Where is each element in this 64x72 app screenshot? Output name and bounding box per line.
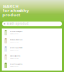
staticText: Greek Yogurt Plain (10, 47, 23, 49)
staticText: Nutri-Score B (10, 57, 19, 59)
staticText: Whole Grain Bread (10, 39, 23, 40)
button[interactable]: Greek Yogurt Plain (2, 45, 62, 53)
staticText: Organic Apple Juice (10, 30, 23, 32)
button[interactable]: Search a product (2, 21, 62, 26)
staticText: product (2, 12, 20, 17)
staticText: Nutri-Score A (10, 66, 19, 67)
staticText: Nutri-Score A (10, 33, 19, 35)
staticText: Search a product (6, 22, 28, 25)
button[interactable]: Whole Grain Bread (2, 37, 62, 45)
staticText: Green Tea Matcha (10, 63, 23, 65)
button[interactable]: Almond Milk Drink (2, 53, 62, 61)
button[interactable]: Organic Apple Juice (2, 28, 62, 37)
staticText: Nutri-Score B (10, 41, 19, 43)
staticText: SEARCH (2, 4, 18, 9)
staticText: Nutri-Score A (10, 49, 19, 51)
staticText: for a healthy (2, 8, 28, 13)
staticText: Almond Milk Drink (10, 55, 21, 57)
button[interactable]: Green Tea Matcha (2, 61, 62, 69)
